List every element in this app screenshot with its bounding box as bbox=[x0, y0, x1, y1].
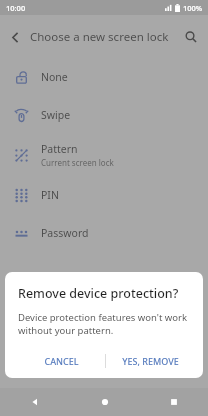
button[interactable]: CANCEL bbox=[18, 350, 105, 372]
staticText: Password bbox=[41, 226, 89, 240]
button[interactable]: Swipe bbox=[0, 96, 208, 134]
staticText: Choose a new screen lock bbox=[30, 29, 170, 45]
staticText: YES, REMOVE bbox=[122, 355, 179, 367]
button[interactable]: Home bbox=[70, 388, 139, 416]
button[interactable]: Password bbox=[0, 214, 208, 252]
button[interactable]: PIN bbox=[0, 176, 208, 214]
staticText: 10:00 bbox=[6, 3, 26, 13]
button[interactable]: Back bbox=[0, 388, 70, 416]
button[interactable]: Pattern bbox=[0, 134, 208, 176]
staticText: CANCEL bbox=[44, 355, 79, 367]
staticText: Remove device protection? bbox=[18, 285, 179, 302]
staticText: Pattern bbox=[41, 142, 78, 156]
button[interactable]: Navigate up bbox=[0, 22, 30, 52]
button[interactable]: Recent apps bbox=[139, 388, 208, 416]
button[interactable]: Search bbox=[174, 20, 208, 54]
staticText: 100% bbox=[183, 3, 203, 13]
button[interactable]: None bbox=[0, 58, 208, 96]
staticText: None bbox=[41, 70, 68, 84]
staticText: Swipe bbox=[41, 108, 71, 122]
staticText: Current screen lock bbox=[41, 157, 114, 168]
button[interactable]: YES, REMOVE bbox=[106, 350, 194, 372]
staticText: Device protection features won't work wi… bbox=[18, 311, 194, 337]
staticText: PIN bbox=[41, 188, 59, 202]
